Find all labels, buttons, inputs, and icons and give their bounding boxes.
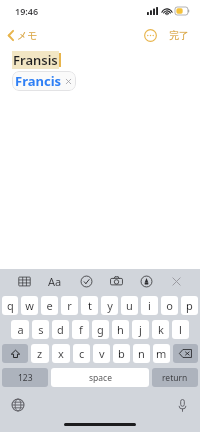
button[interactable]: o (161, 296, 178, 315)
button[interactable]: a (11, 320, 29, 339)
staticText: t (88, 298, 92, 313)
button[interactable]: v (93, 344, 110, 363)
button[interactable]: e (41, 296, 58, 315)
button[interactable]: h (112, 320, 129, 339)
button[interactable]: Checklist (76, 271, 96, 291)
button[interactable]: return (152, 368, 198, 387)
staticText: u (126, 298, 133, 313)
button[interactable]: k (152, 320, 169, 339)
staticText: l (179, 322, 182, 337)
button[interactable]: p (181, 296, 198, 315)
button[interactable]: More options (140, 25, 160, 45)
staticText: d (57, 322, 64, 337)
button[interactable]: x (52, 344, 70, 363)
staticText: z (37, 346, 43, 361)
staticText: m (156, 346, 167, 361)
staticText: Aa (48, 274, 62, 289)
staticText: 19:46 (15, 5, 39, 17)
staticText: o (166, 298, 173, 313)
button[interactable]: g (92, 320, 109, 339)
button[interactable]: Markup (136, 271, 156, 291)
staticText: Fransis (13, 51, 58, 69)
button[interactable]: space (51, 368, 149, 387)
button[interactable]: Dictate (172, 395, 192, 415)
staticText: g (97, 322, 104, 337)
staticText: q (7, 298, 14, 313)
button[interactable]: Close keyboard (166, 271, 186, 291)
staticText: r (67, 298, 72, 313)
staticText: 123 (18, 372, 33, 384)
button[interactable]: l (172, 320, 189, 339)
staticText: e (46, 298, 53, 313)
staticText: メモ (17, 29, 38, 42)
button[interactable]: 完了 (166, 27, 192, 44)
staticText: s (38, 322, 44, 337)
staticText: f (79, 322, 83, 337)
button[interactable]: Table (14, 271, 34, 291)
button[interactable]: Shift (2, 344, 28, 363)
staticText: w (25, 298, 34, 313)
button[interactable]: r (61, 296, 78, 315)
button[interactable]: Change keyboard (8, 395, 28, 415)
staticText: x (58, 346, 64, 361)
button[interactable]: q (2, 296, 18, 315)
staticText: h (117, 322, 124, 337)
staticText: y (107, 298, 113, 313)
staticText: i (148, 298, 151, 313)
button[interactable]: 123 (2, 368, 48, 387)
button[interactable]: f (72, 320, 89, 339)
staticText: space (89, 372, 112, 384)
button[interactable]: メモ (5, 27, 41, 44)
staticText: k (158, 322, 164, 337)
staticText: a (17, 322, 24, 337)
staticText: c (79, 346, 85, 361)
button[interactable]: y (101, 296, 118, 315)
staticText: j (139, 322, 142, 337)
button[interactable]: z (31, 344, 49, 363)
staticText: Francis (15, 72, 62, 90)
staticText: v (99, 346, 105, 361)
button[interactable]: n (133, 344, 150, 363)
button[interactable]: Francis (12, 71, 76, 91)
button[interactable]: Camera (106, 271, 126, 291)
button[interactable]: j (132, 320, 149, 339)
staticText: 完了 (169, 29, 189, 42)
button[interactable]: d (52, 320, 69, 339)
button[interactable]: Aa (44, 271, 66, 291)
button[interactable]: b (113, 344, 130, 363)
button[interactable]: u (121, 296, 138, 315)
staticText: p (186, 298, 193, 313)
button[interactable]: i (141, 296, 158, 315)
button[interactable]: s (32, 320, 49, 339)
button[interactable]: t (81, 296, 98, 315)
staticText: n (138, 346, 145, 361)
button[interactable]: Delete (173, 344, 198, 363)
other: Dismiss suggestion (65, 78, 72, 85)
button[interactable]: m (153, 344, 170, 363)
button[interactable]: w (21, 296, 38, 315)
staticText: b (118, 346, 125, 361)
button[interactable]: c (73, 344, 90, 363)
staticText: return (162, 372, 188, 384)
